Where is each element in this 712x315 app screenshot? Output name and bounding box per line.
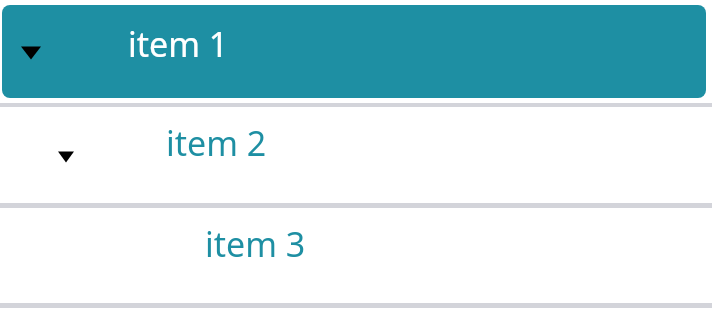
- staticText: item 2: [166, 120, 267, 166]
- button[interactable]: Collapse item 1: [2, 5, 706, 98]
- button[interactable]: Collapse item 1: [17, 42, 45, 64]
- staticText: item 1: [128, 21, 229, 67]
- button[interactable]: Collapse item 2: [55, 148, 77, 166]
- button[interactable]: item 3: [0, 208, 712, 303]
- staticText: item 3: [205, 221, 306, 267]
- button[interactable]: Collapse item 2: [0, 107, 712, 203]
